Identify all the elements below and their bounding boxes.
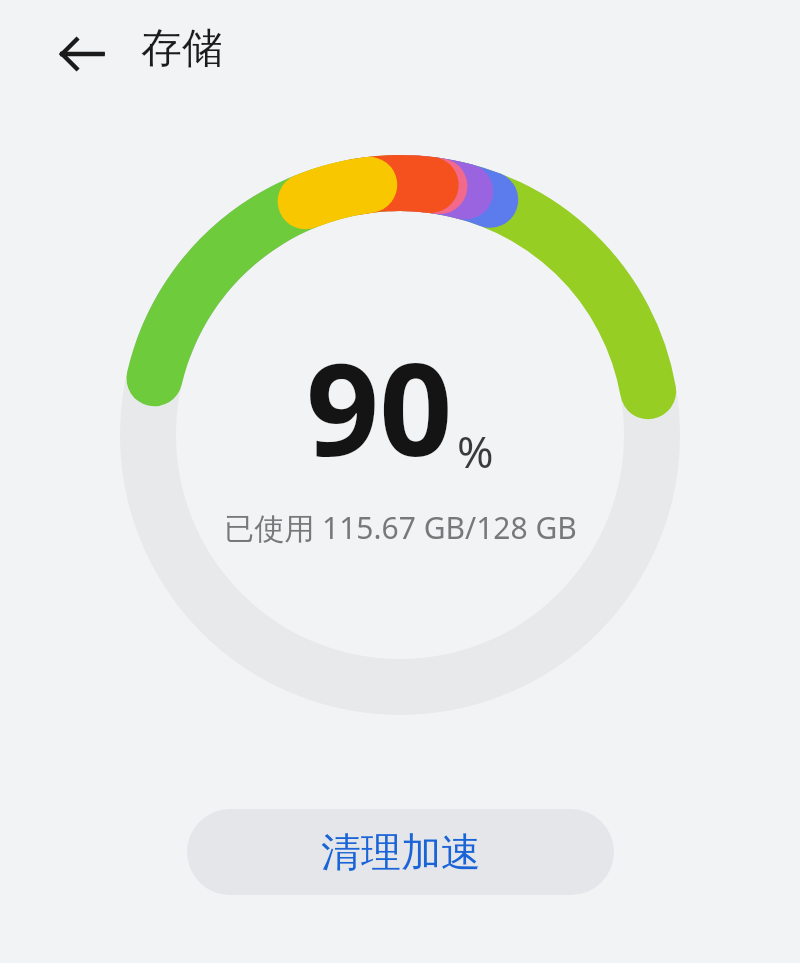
button[interactable]: Back <box>41 22 105 86</box>
staticText: 存储 <box>141 23 223 75</box>
button[interactable]: 清理加速 <box>187 809 614 895</box>
staticText: 90 <box>306 319 453 493</box>
staticText: % <box>457 421 494 481</box>
staticText: 已使用 115.67 GB/128 GB <box>224 507 577 548</box>
staticText: 清理加速 <box>321 827 481 877</box>
